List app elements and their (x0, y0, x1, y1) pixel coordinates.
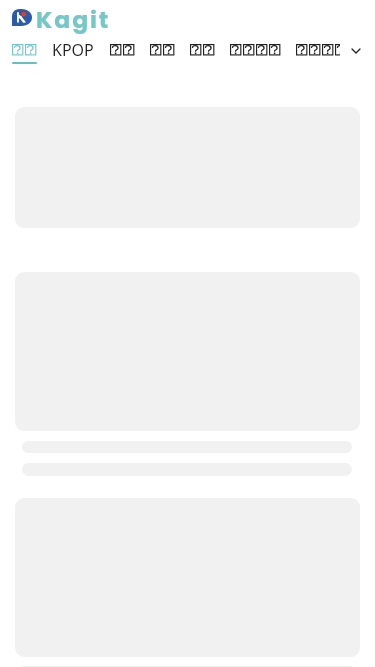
button[interactable] (12, 44, 36, 56)
button[interactable] (110, 44, 134, 56)
button[interactable] (190, 44, 214, 56)
button[interactable] (150, 44, 174, 56)
button[interactable] (230, 44, 280, 56)
button[interactable] (296, 44, 340, 56)
button[interactable]: KPOP (52, 39, 94, 60)
staticText: KPOP (52, 39, 94, 60)
button[interactable]: More categories (343, 38, 369, 64)
staticText: Kagit (36, 3, 111, 36)
button[interactable]: Kagit home (12, 9, 32, 26)
